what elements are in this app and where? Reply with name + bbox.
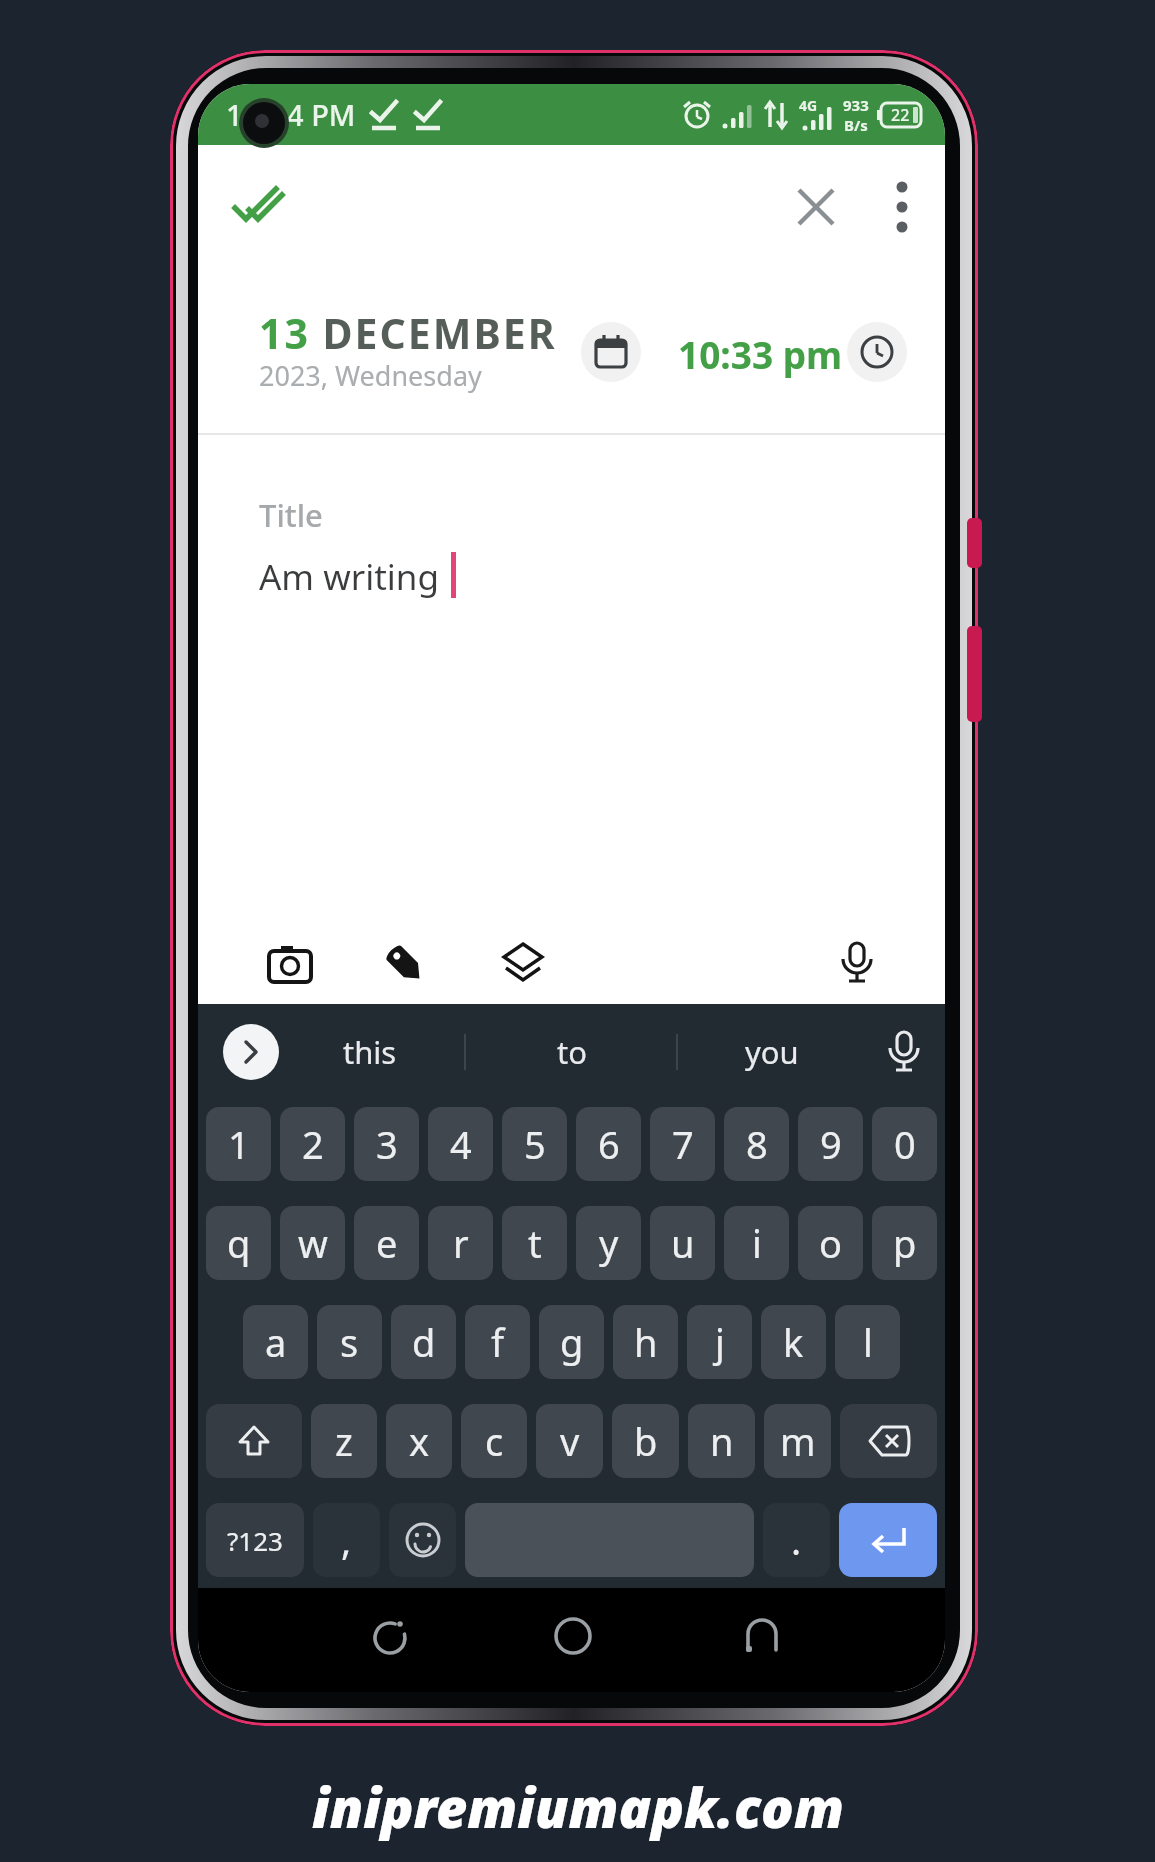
button[interactable] <box>265 939 315 989</box>
staticText: 2023, Wednesday <box>259 357 482 394</box>
button[interactable]: d <box>391 1305 456 1379</box>
staticText: ?123 <box>227 1523 283 1558</box>
button[interactable] <box>389 1503 456 1577</box>
staticText: 5 <box>524 1118 546 1170</box>
staticText: d <box>412 1316 436 1368</box>
button[interactable]: 6 <box>576 1107 641 1181</box>
button[interactable] <box>206 1404 302 1478</box>
staticText: x <box>409 1415 430 1467</box>
button[interactable] <box>377 939 435 997</box>
button[interactable]: y <box>576 1206 641 1280</box>
button[interactable]: z <box>311 1404 377 1478</box>
button[interactable] <box>831 937 883 989</box>
button[interactable]: l <box>835 1305 900 1379</box>
staticText: f <box>491 1316 505 1368</box>
button[interactable]: ?123 <box>206 1503 304 1577</box>
staticText: m <box>780 1415 816 1467</box>
button[interactable]: u <box>650 1206 715 1280</box>
button[interactable] <box>223 1024 279 1080</box>
staticText: 22 <box>891 104 910 126</box>
staticText: Am writing <box>259 553 440 601</box>
button[interactable] <box>465 1503 754 1577</box>
staticText: q <box>227 1217 251 1269</box>
staticText: e <box>376 1217 398 1269</box>
button[interactable]: q <box>206 1206 271 1280</box>
staticText: u <box>671 1217 695 1269</box>
button[interactable]: 0 <box>872 1107 937 1181</box>
button[interactable]: to <box>522 1026 622 1078</box>
button[interactable]: j <box>687 1305 752 1379</box>
button[interactable]: , <box>313 1503 380 1577</box>
button[interactable]: x <box>386 1404 452 1478</box>
button[interactable]: a <box>243 1305 308 1379</box>
button[interactable]: i <box>724 1206 789 1280</box>
button[interactable]: 9 <box>798 1107 863 1181</box>
button[interactable]: t <box>502 1206 567 1280</box>
staticText: h <box>634 1316 658 1368</box>
staticText: 6 <box>598 1118 620 1170</box>
staticText: z <box>335 1415 353 1467</box>
button[interactable]: 8 <box>724 1107 789 1181</box>
staticText: g <box>560 1316 584 1368</box>
staticText: . <box>791 1514 802 1566</box>
staticText: k <box>783 1316 804 1368</box>
button[interactable] <box>358 1604 422 1668</box>
staticText: to <box>557 1031 587 1073</box>
button[interactable]: p <box>872 1206 937 1280</box>
button[interactable]: k <box>761 1305 826 1379</box>
button[interactable] <box>228 179 288 231</box>
button[interactable]: s <box>317 1305 382 1379</box>
staticText: Title <box>259 494 323 536</box>
button[interactable]: n <box>688 1404 755 1478</box>
staticText: 4 <box>450 1118 472 1170</box>
button[interactable] <box>847 322 907 382</box>
staticText: a <box>265 1316 287 1368</box>
staticText: p <box>893 1217 917 1269</box>
button[interactable] <box>878 1026 930 1078</box>
button[interactable] <box>840 1404 937 1478</box>
staticText: l <box>863 1316 873 1368</box>
button[interactable] <box>581 322 641 382</box>
button[interactable]: 4 <box>428 1107 493 1181</box>
button[interactable]: 1 <box>206 1107 271 1181</box>
staticText: t <box>528 1217 542 1269</box>
button[interactable]: f <box>465 1305 530 1379</box>
button[interactable]: m <box>764 1404 831 1478</box>
button[interactable]: r <box>428 1206 493 1280</box>
button[interactable]: o <box>798 1206 863 1280</box>
button[interactable]: 10:33 pm <box>678 329 843 379</box>
button[interactable]: 2 <box>280 1107 345 1181</box>
button[interactable] <box>790 183 842 231</box>
staticText: o <box>819 1217 842 1269</box>
staticText: 8 <box>746 1118 768 1170</box>
button[interactable]: b <box>612 1404 679 1478</box>
staticText: 9 <box>820 1118 842 1170</box>
staticText: y <box>599 1217 619 1269</box>
button[interactable]: e <box>354 1206 419 1280</box>
button[interactable] <box>730 1604 794 1668</box>
button[interactable]: w <box>280 1206 345 1280</box>
button[interactable]: . <box>763 1503 830 1577</box>
button[interactable]: you <box>712 1026 832 1078</box>
button[interactable] <box>541 1604 605 1668</box>
button[interactable] <box>876 177 928 237</box>
button[interactable]: 5 <box>502 1107 567 1181</box>
button[interactable]: g <box>539 1305 604 1379</box>
button[interactable] <box>839 1503 937 1577</box>
staticText: you <box>745 1031 799 1073</box>
button[interactable]: 3 <box>354 1107 419 1181</box>
staticText: 3 <box>376 1118 398 1170</box>
staticText: 0 <box>894 1118 916 1170</box>
staticText: 1 <box>228 1118 250 1170</box>
button[interactable]: 7 <box>650 1107 715 1181</box>
staticText: , <box>341 1514 352 1566</box>
button[interactable]: c <box>461 1404 527 1478</box>
staticText: r <box>453 1217 469 1269</box>
staticText: n <box>710 1415 734 1467</box>
button[interactable]: this <box>310 1026 430 1078</box>
button[interactable]: h <box>613 1305 678 1379</box>
staticText: c <box>485 1415 504 1467</box>
staticText: this <box>343 1031 397 1073</box>
button[interactable] <box>497 939 549 991</box>
button[interactable]: v <box>536 1404 603 1478</box>
